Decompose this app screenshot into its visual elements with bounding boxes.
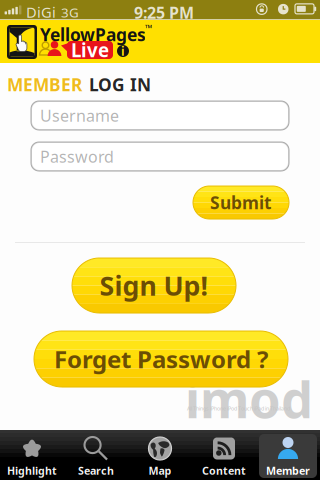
staticText: DiGi [26,2,56,22]
button[interactable]: Submit [193,186,289,219]
staticText: Password [40,146,114,167]
button[interactable]: Forget Password ? [34,331,288,387]
staticText: MEMBER [7,73,82,96]
button[interactable]: Highlight [0,432,64,480]
button[interactable]: Member [256,432,320,480]
staticText: Highlight [7,463,57,478]
button[interactable]: Content [192,432,256,480]
staticText: i [121,43,125,59]
button[interactable]: Search [64,432,128,480]
staticText: Search [78,463,114,478]
staticText: Sign Up! [99,268,208,303]
staticText: imod [185,365,313,432]
staticText: Content [202,463,246,478]
staticText: ™ [145,22,152,34]
staticText: Map [148,463,171,478]
staticText: YellowPages [40,23,146,46]
staticText: Submit [210,191,272,214]
button[interactable]: Map [128,432,192,480]
staticText: 3G [61,3,79,21]
staticText: Live [71,38,109,62]
staticText: Username [40,105,119,126]
staticText: All Things iPhone iPod Touch iPad in Tha… [187,405,290,412]
button[interactable]: Sign Up! [72,258,236,313]
staticText: Forget Password ? [54,343,268,375]
staticText: 9:25 PM [134,2,194,23]
staticText: LOG IN [89,73,151,96]
staticText: Member [266,463,310,478]
